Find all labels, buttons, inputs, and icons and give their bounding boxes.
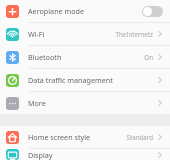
staticText: On <box>144 53 153 61</box>
other: Home screen style <box>6 131 19 144</box>
button[interactable]: Aeroplane mode toggle <box>142 6 163 17</box>
staticText: Standard <box>126 133 153 141</box>
button[interactable]: Home screen style <box>0 126 170 149</box>
button[interactable]: Aeroplane mode <box>0 0 170 23</box>
staticText: More <box>28 98 46 108</box>
staticText: Home screen style <box>28 132 91 142</box>
staticText: Aeroplane mode <box>28 6 85 16</box>
button[interactable]: More <box>0 92 170 114</box>
staticText: Bluetooth <box>28 52 62 62</box>
other: Aeroplane mode <box>6 5 19 18</box>
button[interactable]: Wi-Fi <box>0 23 170 46</box>
staticText: Wi-Fi <box>28 29 45 39</box>
other: Bluetooth <box>6 51 19 64</box>
other: Data traffic management <box>6 74 19 87</box>
staticText: Display <box>28 150 53 160</box>
other: Wi-Fi <box>6 28 19 41</box>
other: More <box>6 97 19 110</box>
other: Display <box>6 149 19 160</box>
staticText: Data traffic management <box>28 75 113 85</box>
button[interactable]: Data traffic management <box>0 69 170 92</box>
button[interactable]: Bluetooth <box>0 46 170 69</box>
staticText: TheInternetz <box>115 30 153 38</box>
button[interactable]: Display <box>0 149 170 160</box>
